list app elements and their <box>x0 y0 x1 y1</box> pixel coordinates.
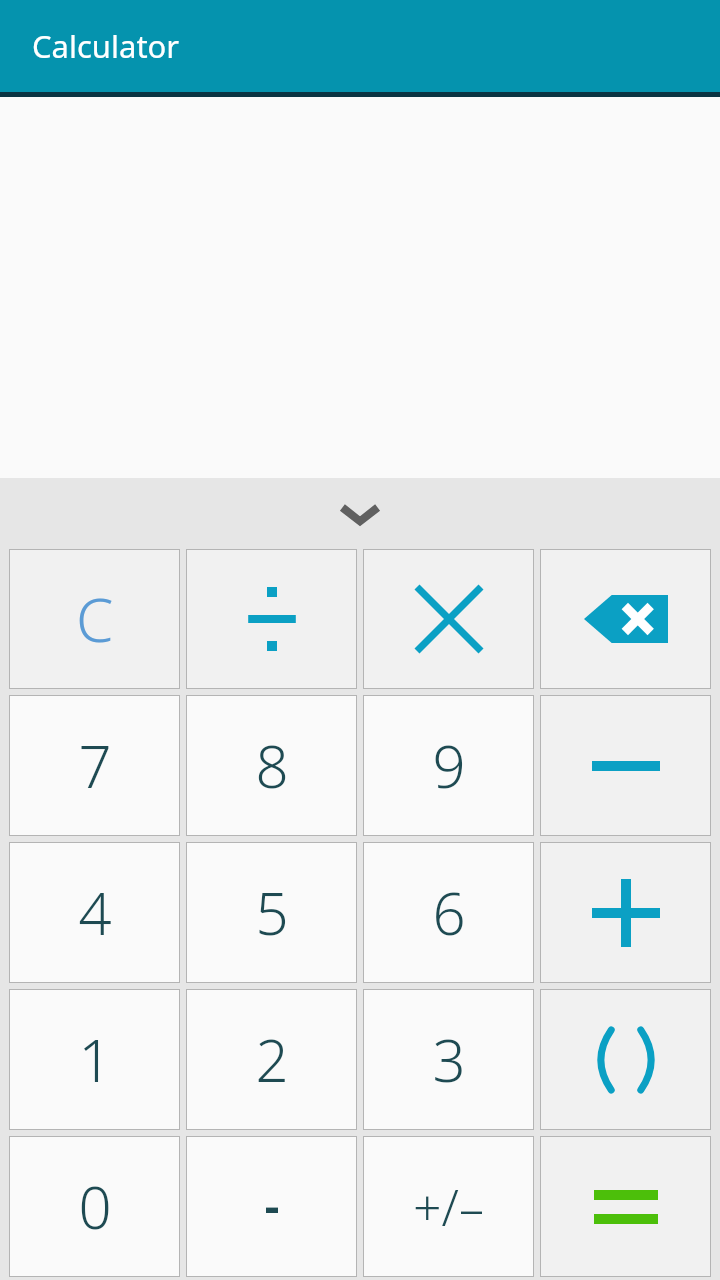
button[interactable]: 5 <box>186 842 357 983</box>
staticText: 9 <box>432 726 466 805</box>
button[interactable]: Parentheses <box>540 989 711 1130</box>
staticText: C <box>76 578 114 660</box>
button[interactable]: Multiply <box>363 549 534 689</box>
staticText: 4 <box>78 873 112 952</box>
button[interactable]: Divide <box>186 549 357 689</box>
staticText: 7 <box>78 726 112 805</box>
button[interactable]: 2 <box>186 989 357 1130</box>
staticText: 6 <box>432 873 466 952</box>
button[interactable]: Plus <box>540 842 711 983</box>
staticText: 5 <box>255 873 289 952</box>
button[interactable]: Backspace <box>540 549 711 689</box>
button[interactable]: Clear <box>9 549 180 689</box>
button[interactable]: Decimal point <box>186 1136 357 1277</box>
button[interactable]: Plus minus sign <box>363 1136 534 1277</box>
button[interactable]: 0 <box>9 1136 180 1277</box>
staticText: 8 <box>255 726 289 805</box>
button[interactable]: 8 <box>186 695 357 836</box>
staticText: Calculator <box>32 25 180 67</box>
button[interactable]: Collapse <box>0 478 720 549</box>
button[interactable]: Equals <box>540 1136 711 1277</box>
button[interactable]: 6 <box>363 842 534 983</box>
button[interactable]: 4 <box>9 842 180 983</box>
staticText: 1 <box>78 1020 112 1099</box>
staticText: +/– <box>413 1173 484 1241</box>
button[interactable]: 1 <box>9 989 180 1130</box>
button[interactable]: Minus <box>540 695 711 836</box>
staticText: 2 <box>255 1020 289 1099</box>
button[interactable]: 3 <box>363 989 534 1130</box>
button[interactable]: 9 <box>363 695 534 836</box>
button[interactable]: 7 <box>9 695 180 836</box>
staticText: 3 <box>432 1020 466 1099</box>
staticText: 0 <box>78 1167 112 1246</box>
